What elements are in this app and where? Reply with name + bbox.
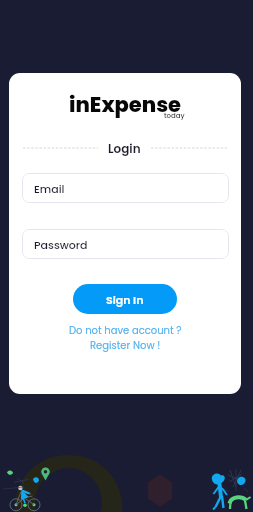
staticText: Password <box>34 237 88 252</box>
staticText: Login <box>108 140 141 157</box>
button[interactable]: Do not have account ? <box>9 323 241 352</box>
staticText: inExpense <box>69 90 182 119</box>
staticText: today <box>164 111 185 121</box>
staticText: Sign In <box>106 292 144 307</box>
button[interactable]: Password <box>22 229 229 259</box>
button[interactable]: Sign In <box>73 284 177 314</box>
staticText: Register Now ! <box>90 338 161 352</box>
staticText: Email <box>34 181 65 196</box>
button[interactable]: Email <box>22 173 229 203</box>
staticText: Do not have account ? <box>69 323 182 337</box>
